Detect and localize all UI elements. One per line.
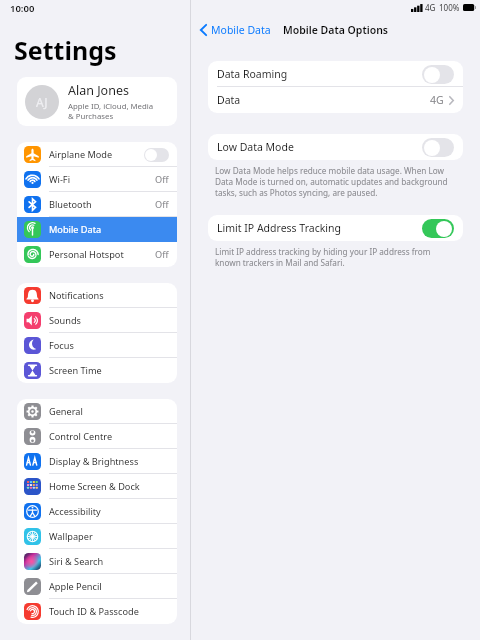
staticText: Settings bbox=[14, 33, 117, 67]
button[interactable]: Focus bbox=[17, 333, 177, 358]
staticText: Mobile Data bbox=[49, 223, 169, 236]
staticText: Focus bbox=[49, 339, 169, 352]
staticText: 10:00 bbox=[10, 2, 35, 15]
staticText: Limit IP address tracking by hiding your… bbox=[215, 246, 458, 268]
staticText: Apple Pencil bbox=[49, 580, 169, 593]
button[interactable]: Limit IP Address Tracking bbox=[208, 215, 463, 241]
button[interactable]: Personal Hotspot bbox=[17, 242, 177, 267]
button[interactable]: Wallpaper bbox=[17, 524, 177, 549]
staticText: Limit IP Address Tracking bbox=[217, 221, 422, 235]
button[interactable]: Accessibility bbox=[17, 499, 177, 524]
button[interactable]: Limit IP Address Tracking switch bbox=[422, 219, 454, 238]
button[interactable]: Mobile Data bbox=[198, 20, 273, 40]
staticText: Wallpaper bbox=[49, 530, 169, 543]
staticText: Alan Jones bbox=[68, 82, 129, 99]
button[interactable]: Control Centre bbox=[17, 424, 177, 449]
staticText: Off bbox=[155, 248, 169, 261]
button[interactable]: Screen Time bbox=[17, 358, 177, 383]
button[interactable]: Notifications bbox=[17, 283, 177, 308]
staticText: Bluetooth bbox=[49, 198, 155, 211]
button[interactable]: Low Data Mode bbox=[208, 134, 463, 160]
staticText: Mobile Data bbox=[211, 23, 271, 37]
staticText: AJ bbox=[36, 94, 48, 110]
button[interactable]: Siri & Search bbox=[17, 549, 177, 574]
button[interactable]: Touch ID & Passcode bbox=[17, 599, 177, 624]
staticText: Control Centre bbox=[49, 430, 169, 443]
staticText: Airplane Mode bbox=[49, 148, 144, 161]
button[interactable]: Data Roaming bbox=[208, 61, 463, 87]
button[interactable]: Bluetooth bbox=[17, 192, 177, 217]
button[interactable]: General bbox=[17, 399, 177, 424]
staticText: Personal Hotspot bbox=[49, 248, 155, 261]
staticText: Data Roaming bbox=[217, 67, 422, 81]
button[interactable]: Airplane Mode bbox=[17, 142, 177, 167]
staticText: Low Data Mode helps reduce mobile data u… bbox=[215, 165, 458, 198]
button[interactable]: Mobile Data bbox=[17, 217, 177, 242]
button[interactable]: Airplane Mode toggle bbox=[144, 148, 169, 162]
staticText: Data bbox=[217, 93, 430, 107]
staticText: Notifications bbox=[49, 289, 169, 302]
button[interactable]: Wi-Fi bbox=[17, 167, 177, 192]
button[interactable]: Data bbox=[208, 87, 463, 113]
staticText: 100% bbox=[439, 2, 460, 13]
button[interactable]: AJ bbox=[17, 77, 177, 126]
staticText: Siri & Search bbox=[49, 555, 169, 568]
button[interactable]: Display & Brightness bbox=[17, 449, 177, 474]
staticText: Display & Brightness bbox=[49, 455, 169, 468]
staticText: Sounds bbox=[49, 314, 169, 327]
staticText: Low Data Mode bbox=[217, 140, 422, 154]
button[interactable]: Data Roaming switch bbox=[422, 65, 454, 84]
staticText: Wi-Fi bbox=[49, 173, 155, 186]
staticText: 4G bbox=[425, 2, 436, 13]
staticText: Accessibility bbox=[49, 505, 169, 518]
staticText: Touch ID & Passcode bbox=[49, 605, 169, 618]
button[interactable]: Apple Pencil bbox=[17, 574, 177, 599]
staticText: 4G bbox=[430, 93, 444, 107]
staticText: Mobile Data Options bbox=[283, 23, 389, 37]
staticText: Apple ID, iCloud, Media & Purchases bbox=[68, 101, 154, 121]
staticText: Home Screen & Dock bbox=[49, 480, 169, 493]
staticText: Off bbox=[155, 198, 169, 211]
button[interactable]: Low Data Mode switch bbox=[422, 138, 454, 157]
staticText: Screen Time bbox=[49, 364, 169, 377]
staticText: General bbox=[49, 405, 169, 418]
button[interactable]: Home Screen & Dock bbox=[17, 474, 177, 499]
staticText: Off bbox=[155, 173, 169, 186]
button[interactable]: Sounds bbox=[17, 308, 177, 333]
